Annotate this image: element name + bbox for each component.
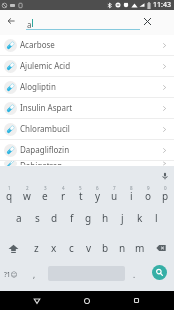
- staticText: a: [16, 211, 22, 225]
- staticText: w: [23, 189, 31, 203]
- button[interactable]: Alogliptin: [0, 77, 174, 97]
- button[interactable]: .: [127, 264, 142, 284]
- staticText: m: [135, 241, 145, 255]
- button[interactable]: 6: [89, 184, 106, 203]
- button[interactable]: 0: [157, 184, 174, 203]
- staticText: Dapagliflozin: [20, 144, 70, 155]
- staticText: d: [51, 211, 58, 225]
- staticText: 2: [26, 185, 29, 191]
- staticText: Insulin Aspart: [20, 102, 73, 113]
- staticText: Ajulemic Acid: [20, 60, 71, 71]
- staticText: h: [102, 211, 109, 225]
- staticText: 11:43: [153, 0, 171, 10]
- button[interactable]: ,: [26, 264, 42, 284]
- staticText: Alogliptin: [20, 81, 56, 92]
- staticText: 6: [96, 185, 99, 191]
- button[interactable]: v: [80, 239, 97, 257]
- button[interactable]: Dabigatran: [0, 161, 174, 166]
- button[interactable]: 3: [36, 184, 54, 203]
- staticText: .: [133, 269, 136, 280]
- staticText: 0: [164, 185, 167, 191]
- staticText: ,: [33, 269, 36, 280]
- staticText: p: [162, 189, 169, 203]
- button[interactable]: 1: [0, 184, 18, 203]
- button[interactable]: a: [10, 209, 28, 227]
- staticText: 7: [113, 185, 116, 191]
- staticText: Chlorambucil: [20, 123, 70, 134]
- staticText: u: [111, 189, 118, 203]
- staticText: k: [137, 211, 143, 225]
- button[interactable]: d: [46, 209, 63, 227]
- button[interactable]: l: [148, 209, 165, 227]
- staticText: l: [155, 211, 158, 225]
- staticText: r: [61, 189, 66, 203]
- button[interactable]: k: [131, 209, 148, 227]
- button[interactable]: Back: [2, 12, 20, 30]
- button[interactable]: s: [28, 209, 46, 227]
- staticText: s: [35, 211, 40, 225]
- staticText: y: [95, 189, 101, 203]
- button[interactable]: m: [131, 239, 148, 257]
- staticText: 5: [79, 185, 82, 191]
- staticText: 9: [147, 185, 150, 191]
- button[interactable]: Insulin Aspart: [0, 98, 174, 118]
- button[interactable]: Recent apps: [126, 291, 146, 310]
- button[interactable]: Home: [77, 291, 97, 310]
- staticText: Dabigatran: [20, 160, 63, 165]
- button[interactable]: 7: [106, 184, 123, 203]
- button[interactable]: b: [97, 239, 114, 257]
- button[interactable]: 2: [18, 184, 36, 203]
- staticText: a: [27, 19, 32, 30]
- staticText: t: [79, 189, 83, 203]
- staticText: i: [130, 189, 133, 203]
- button[interactable]: 9: [140, 184, 157, 203]
- button[interactable]: Ajulemic Acid: [0, 56, 174, 76]
- button[interactable]: Acarbose: [0, 35, 174, 55]
- staticText: x: [51, 241, 57, 255]
- button[interactable]: Backspace: [148, 239, 174, 257]
- button[interactable]: j: [114, 209, 131, 227]
- button[interactable]: Dapagliflozin: [0, 140, 174, 160]
- staticText: ?1☺: [4, 270, 18, 279]
- button[interactable]: ?1☺: [2, 264, 19, 284]
- button[interactable]: 8: [123, 184, 140, 203]
- staticText: e: [42, 189, 48, 203]
- button[interactable]: Back: [27, 291, 47, 310]
- button[interactable]: 4: [54, 184, 72, 203]
- button[interactable]: x: [45, 239, 63, 257]
- staticText: z: [34, 241, 39, 255]
- button[interactable]: n: [114, 239, 131, 257]
- staticText: 8: [130, 185, 133, 191]
- button[interactable]: Clear search: [138, 12, 156, 30]
- staticText: Acarbose: [20, 39, 55, 50]
- staticText: o: [145, 189, 152, 203]
- button[interactable]: c: [63, 239, 80, 257]
- staticText: v: [86, 241, 92, 255]
- button[interactable]: Shift: [0, 239, 27, 257]
- button[interactable]: g: [80, 209, 97, 227]
- button[interactable]: 5: [72, 184, 89, 203]
- button[interactable]: z: [27, 239, 45, 257]
- button[interactable]: Voice input: [156, 167, 173, 184]
- staticText: j: [121, 211, 124, 225]
- button[interactable]: h: [97, 209, 114, 227]
- staticText: 3: [44, 185, 47, 191]
- staticText: 1: [8, 185, 11, 191]
- button[interactable]: Search: [152, 265, 167, 280]
- staticText: n: [119, 241, 126, 255]
- staticText: 4: [62, 185, 65, 191]
- staticText: g: [85, 211, 92, 225]
- staticText: f: [70, 211, 74, 225]
- button[interactable]: Chlorambucil: [0, 119, 174, 139]
- staticText: q: [6, 189, 13, 203]
- button[interactable]: f: [63, 209, 80, 227]
- staticText: b: [102, 241, 109, 255]
- staticText: c: [69, 241, 74, 255]
